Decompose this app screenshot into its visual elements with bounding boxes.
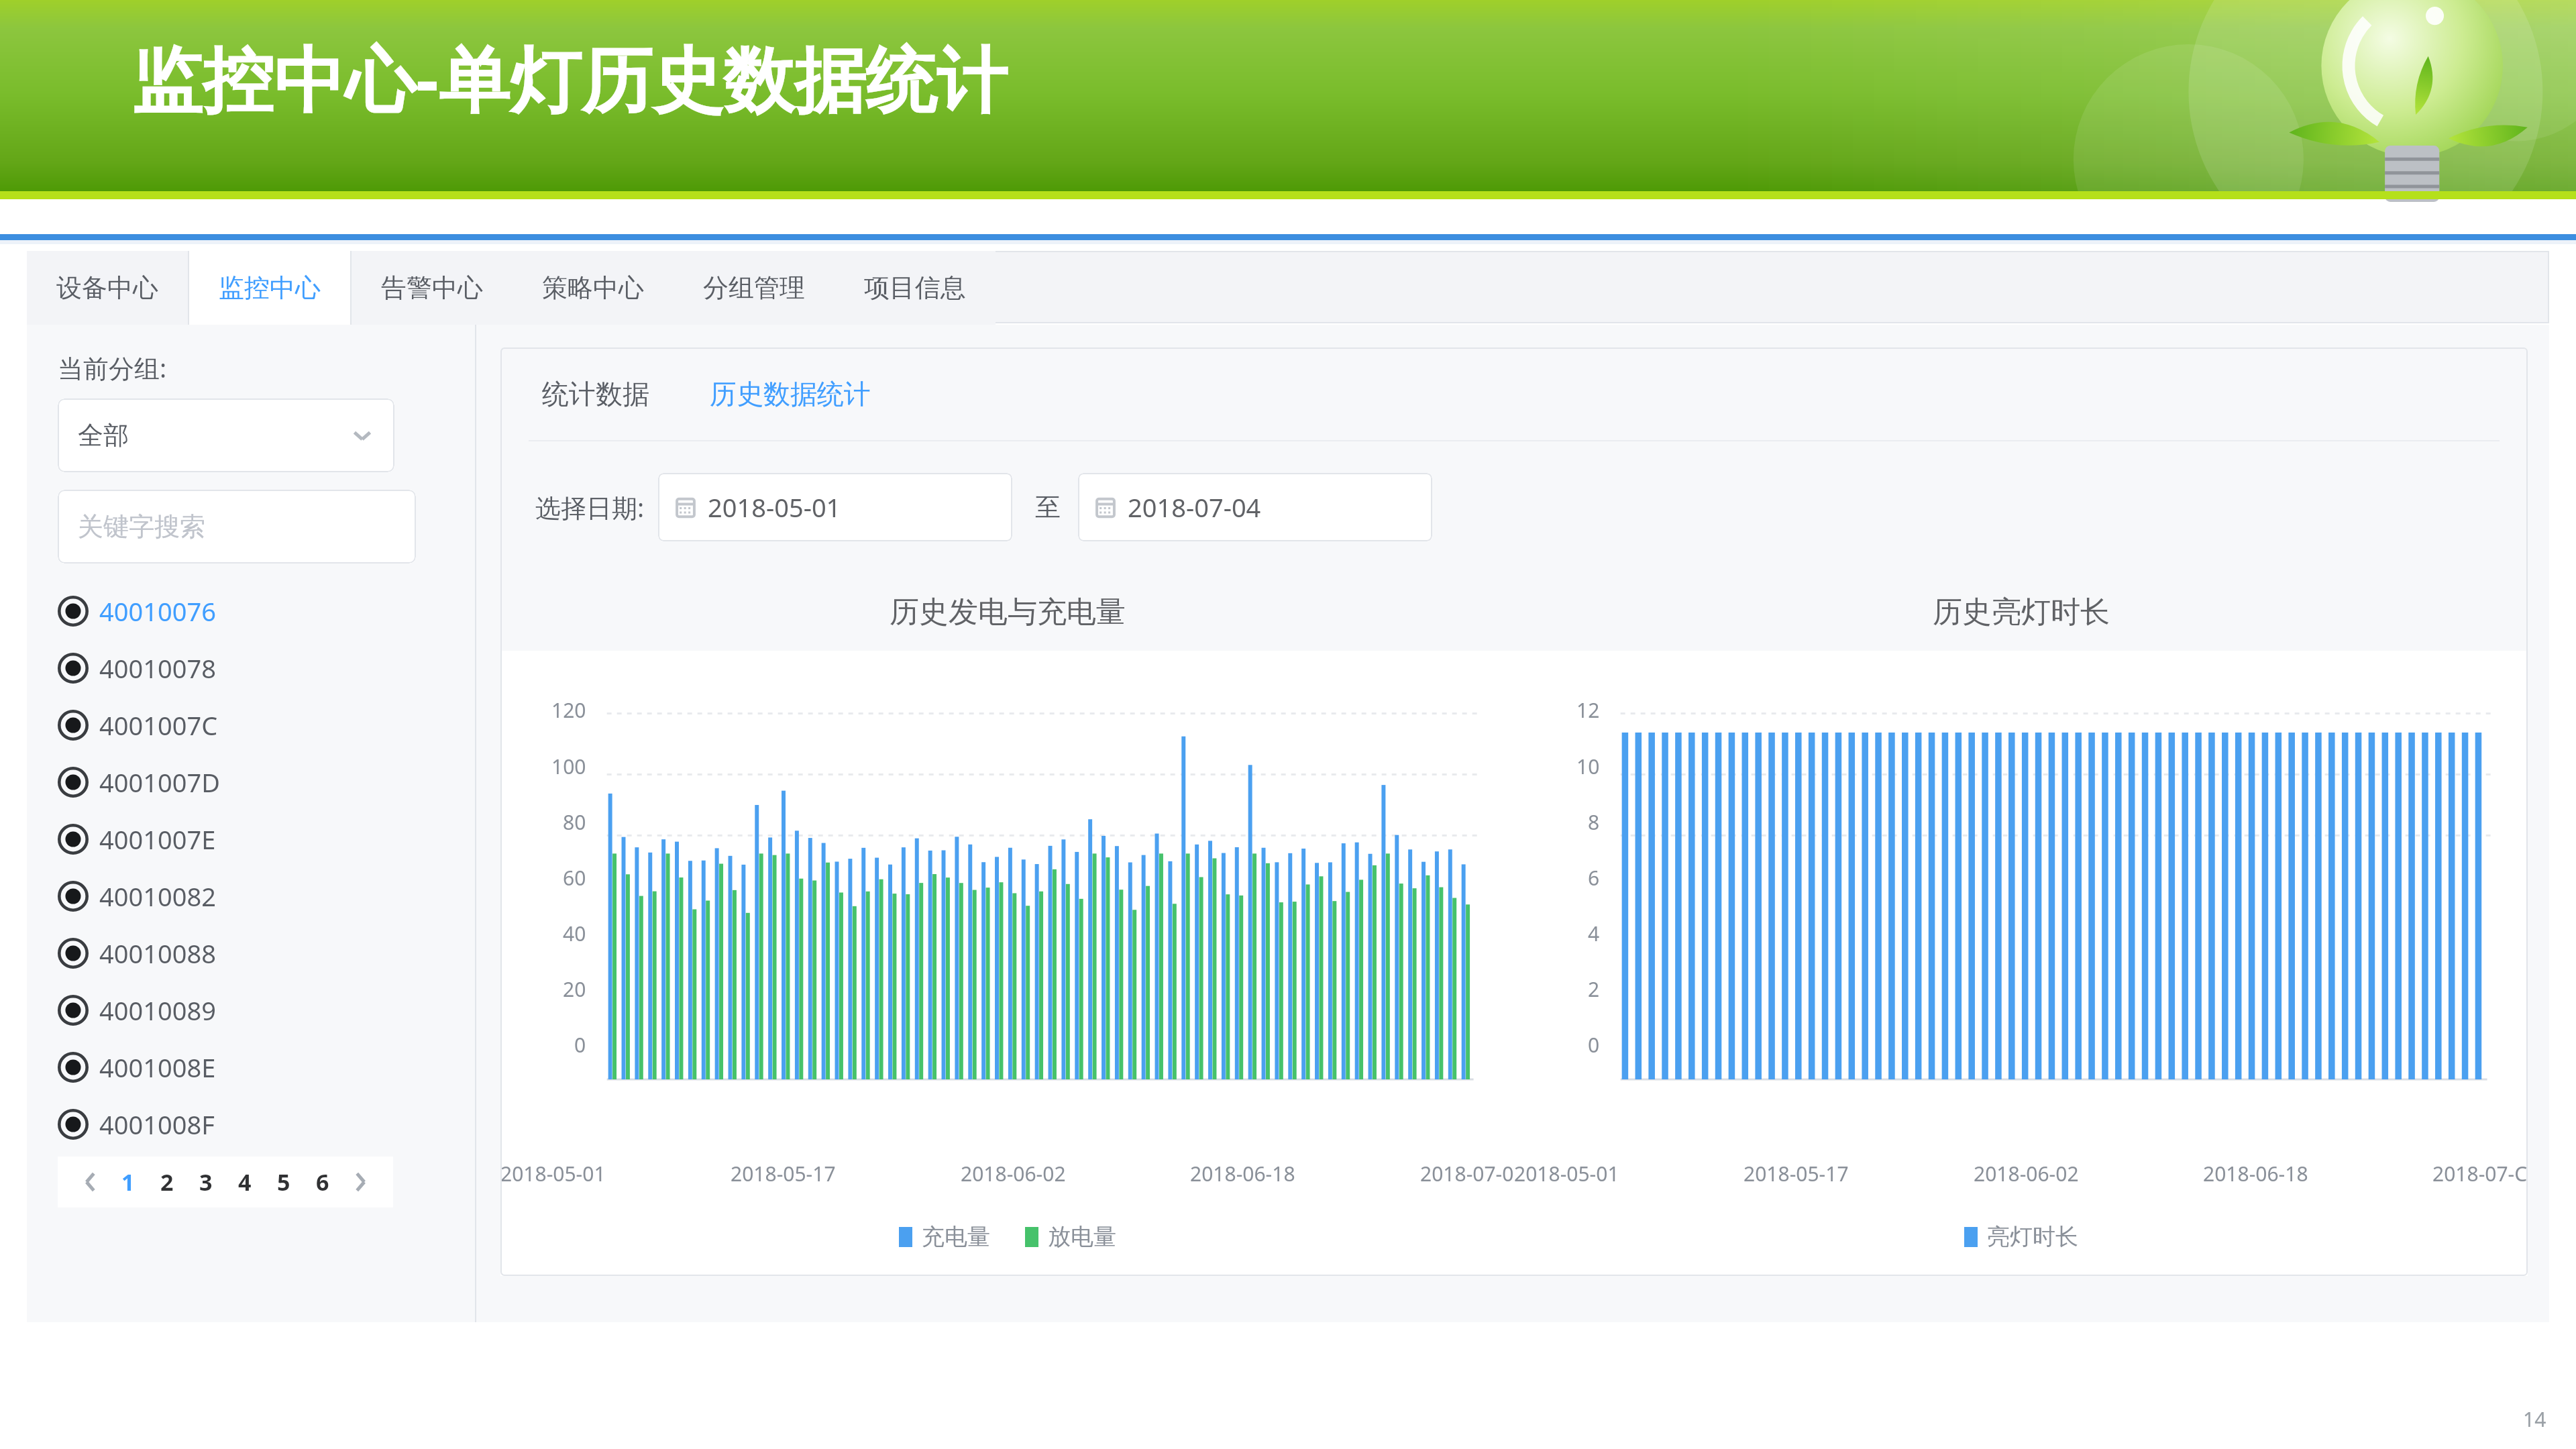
- staticText: 5: [277, 1167, 290, 1197]
- staticText: 40010078: [99, 651, 216, 686]
- button[interactable]: 项目信息: [835, 251, 996, 325]
- staticText: 亮灯时长: [1987, 1222, 2078, 1251]
- staticText: 40010076: [99, 594, 216, 629]
- staticText: 项目信息: [864, 272, 966, 304]
- button[interactable]: 1: [109, 1157, 148, 1207]
- button[interactable]: 告警中心: [352, 251, 513, 325]
- staticText: 至: [1035, 491, 1061, 523]
- staticText: 充电量: [922, 1222, 990, 1251]
- button[interactable]: 4001007D: [58, 753, 475, 810]
- staticText: 8: [1588, 808, 1600, 836]
- staticText: 10: [1576, 753, 1600, 780]
- staticText: 14: [2523, 1405, 2546, 1433]
- staticText: 1: [121, 1167, 135, 1197]
- staticText: 80: [563, 808, 586, 836]
- staticText: 关键字搜索: [78, 511, 205, 543]
- button[interactable]: 4001007C: [58, 696, 475, 753]
- staticText: 2018-05-17: [1743, 1160, 1849, 1187]
- staticText: 4: [1588, 920, 1600, 947]
- button[interactable]: Previous page: [72, 1164, 109, 1200]
- staticText: 2018-05-01: [708, 490, 841, 525]
- button[interactable]: 40010088: [58, 924, 475, 981]
- staticText: 2018-06-18: [2203, 1160, 2308, 1187]
- staticText: 0: [574, 1031, 586, 1059]
- button[interactable]: 6: [303, 1157, 342, 1207]
- button[interactable]: 统计数据: [535, 370, 656, 417]
- staticText: 2018-05-17: [731, 1160, 836, 1187]
- button[interactable]: 关键字搜索: [58, 490, 416, 563]
- button[interactable]: 2018-07-04: [1078, 473, 1432, 541]
- button[interactable]: 设备中心: [27, 251, 188, 325]
- button[interactable]: 40010082: [58, 867, 475, 924]
- staticText: 分组管理: [703, 272, 805, 304]
- button[interactable]: 5: [264, 1157, 303, 1207]
- staticText: 60: [563, 864, 586, 892]
- staticText: 4001008E: [99, 1050, 216, 1085]
- staticText: 4001007C: [99, 708, 218, 743]
- staticText: 历史数据统计: [710, 377, 871, 411]
- staticText: 历史发电与充电量: [890, 594, 1126, 631]
- staticText: 历史亮灯时长: [1933, 594, 2110, 631]
- staticText: 100: [551, 753, 586, 780]
- staticText: 4001007E: [99, 822, 216, 857]
- staticText: 12: [1576, 696, 1600, 724]
- button[interactable]: 全部: [58, 398, 394, 472]
- button[interactable]: 分组管理: [674, 251, 835, 325]
- staticText: 监控中心-单灯历史数据统计: [131, 30, 1008, 127]
- button[interactable]: 40010078: [58, 639, 475, 696]
- button[interactable]: 40010076: [58, 582, 475, 639]
- button[interactable]: 监控中心: [189, 251, 350, 325]
- staticText: 选择日期:: [535, 490, 645, 525]
- staticText: 40010089: [99, 993, 216, 1028]
- staticText: 4: [238, 1167, 252, 1197]
- button[interactable]: 4: [225, 1157, 264, 1207]
- staticText: 6: [1588, 864, 1600, 892]
- button[interactable]: 2018-05-01: [658, 473, 1012, 541]
- staticText: 2018-06-18: [1190, 1160, 1295, 1187]
- staticText: 40: [563, 920, 586, 947]
- staticText: 6: [316, 1167, 329, 1197]
- staticText: 40010088: [99, 936, 216, 971]
- button[interactable]: 策略中心: [513, 251, 674, 325]
- staticText: 2018-05-01: [500, 1160, 606, 1187]
- button[interactable]: 40010089: [58, 981, 475, 1038]
- staticText: 设备中心: [56, 272, 158, 304]
- staticText: 当前分组:: [58, 350, 167, 385]
- staticText: 2018-07-0: [1420, 1160, 1514, 1187]
- staticText: 2018-06-02: [961, 1160, 1066, 1187]
- staticText: 2018-06-02: [1974, 1160, 2079, 1187]
- staticText: 4001008F: [99, 1107, 215, 1142]
- staticText: 2018-07-04: [1128, 490, 1261, 525]
- staticText: 统计数据: [542, 377, 649, 411]
- button[interactable]: 4001008E: [58, 1038, 475, 1095]
- staticText: 告警中心: [381, 272, 483, 304]
- staticText: 2018-07-C: [2432, 1160, 2528, 1187]
- button[interactable]: 4001007E: [58, 810, 475, 867]
- staticText: 放电量: [1048, 1222, 1116, 1251]
- staticText: 4001007D: [99, 765, 220, 800]
- staticText: 20: [563, 975, 586, 1003]
- staticText: 40010082: [99, 879, 216, 914]
- staticText: 全部: [78, 419, 350, 451]
- staticText: 2: [160, 1167, 174, 1197]
- button[interactable]: 2: [148, 1157, 186, 1207]
- staticText: 策略中心: [542, 272, 644, 304]
- staticText: 120: [551, 696, 586, 724]
- staticText: 2: [1588, 975, 1600, 1003]
- button[interactable]: 4001008F: [58, 1095, 475, 1152]
- staticText: 监控中心: [219, 272, 321, 304]
- button[interactable]: 历史数据统计: [703, 370, 877, 417]
- button[interactable]: 3: [186, 1157, 225, 1207]
- button[interactable]: Next page: [342, 1164, 378, 1200]
- staticText: 3: [199, 1167, 213, 1197]
- staticText: 2018-05-01: [1514, 1160, 1619, 1187]
- staticText: 0: [1588, 1031, 1600, 1059]
